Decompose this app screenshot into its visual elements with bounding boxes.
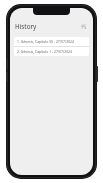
button[interactable]: Sort <box>79 22 88 31</box>
staticText: 2. Génesis, Capítulo 1 - 27/07/2024 <box>17 49 72 54</box>
button[interactable]: 1. Génesis, Capítulo 50 - 27/07/2024 <box>14 37 89 46</box>
staticText: History <box>15 22 37 30</box>
button[interactable]: 2. Génesis, Capítulo 1 - 27/07/2024 <box>14 47 89 56</box>
staticText: 1. Génesis, Capítulo 50 - 27/07/2024 <box>17 39 74 44</box>
